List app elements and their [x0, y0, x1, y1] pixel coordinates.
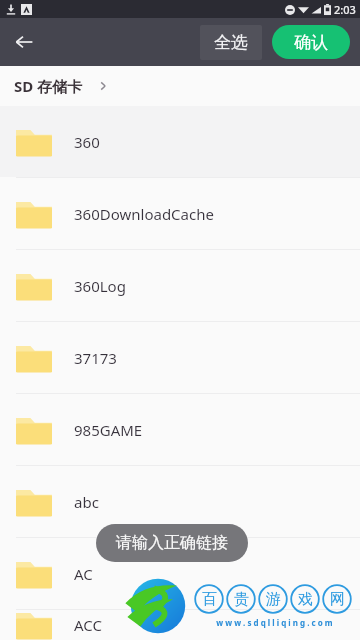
staticText: 贵 [234, 590, 249, 609]
staticText: 戏 [298, 590, 313, 609]
staticText: 全选 [214, 32, 248, 53]
button[interactable]: 37173 [0, 322, 360, 393]
button[interactable]: abc [0, 466, 360, 537]
button[interactable]: 确认 [272, 25, 350, 59]
staticText: 百 [202, 590, 217, 609]
staticText: AC [74, 564, 93, 584]
staticText: 360Log [74, 276, 126, 296]
staticText: abc [74, 492, 99, 512]
staticText: 请输入正确链接 [116, 533, 228, 553]
button[interactable]: 360DownloadCache [0, 178, 360, 249]
staticText: 2:03 [334, 2, 356, 17]
button[interactable]: 985GAME [0, 394, 360, 465]
staticText: 360DownloadCache [74, 204, 214, 224]
button[interactable]: SD 存储卡 [0, 66, 360, 106]
staticText: 985GAME [74, 420, 143, 440]
staticText: 37173 [74, 348, 117, 368]
staticText: 游 [266, 590, 281, 609]
staticText: 360 [74, 132, 100, 152]
button[interactable]: AC [0, 538, 360, 609]
button[interactable]: 360Log [0, 250, 360, 321]
staticText: 网 [330, 590, 345, 609]
button[interactable]: 360 [0, 106, 360, 177]
button[interactable]: 全选 [200, 25, 262, 60]
staticText: ACC [74, 615, 102, 635]
button[interactable]: Back [0, 18, 48, 66]
button[interactable]: ACC [0, 610, 360, 640]
staticText: w w w . s d q l l i q i n g . c o m [216, 617, 333, 628]
staticText: SD 存储卡 [14, 76, 83, 96]
staticText: 确认 [294, 32, 328, 53]
